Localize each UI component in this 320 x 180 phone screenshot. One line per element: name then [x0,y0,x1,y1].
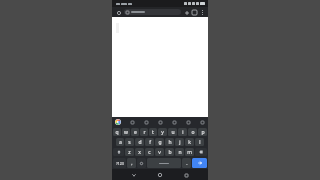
button[interactable]: Google [115,119,121,125]
staticText: ?123 [116,161,124,166]
staticText: h [168,139,172,146]
button[interactable]: GIF [143,119,149,125]
staticText: y [161,129,164,136]
button[interactable]: b [165,148,174,156]
button[interactable] [124,9,181,15]
button[interactable]: j [175,138,184,146]
button[interactable]: e [131,128,139,136]
staticText: k [188,139,191,146]
button[interactable]: d [135,138,144,146]
button[interactable]: r [140,128,148,136]
button[interactable]: ?123 [113,158,126,168]
staticText: s [128,139,131,146]
button[interactable]: h [165,138,174,146]
staticText: o [191,129,195,136]
staticText: t [152,129,154,136]
button[interactable]: n [175,148,184,156]
staticText: z [128,149,131,156]
staticText: m [187,149,192,156]
button[interactable]: Themes [129,119,135,125]
button[interactable]: m [185,148,194,156]
button[interactable]: Switch tabs [191,9,198,16]
staticText: p [201,129,205,136]
staticText: l [199,139,201,146]
staticText: e [134,129,137,136]
button[interactable]: Settings [185,119,191,125]
button[interactable]: g [155,138,164,146]
button[interactable]: u [168,128,177,136]
button[interactable]: o [188,128,197,136]
button[interactable]: t [149,128,157,136]
button[interactable]: Back [130,171,138,179]
staticText: d [138,139,142,146]
button[interactable]: k [185,138,194,146]
button[interactable]: Shift [113,148,124,156]
button[interactable]: Voice input [199,119,205,125]
staticText: x [138,149,141,156]
staticText: w [124,129,128,136]
button[interactable]: Enter [192,158,207,168]
staticText: i [182,129,184,136]
staticText: q [115,129,119,136]
button[interactable]: x [135,148,144,156]
button[interactable]: y [158,128,167,136]
staticText: g [158,139,162,146]
button[interactable]: z [125,148,134,156]
staticText: j [179,139,181,146]
button[interactable]: l [195,138,204,146]
button[interactable]: More options [199,9,205,15]
staticText: , [131,160,133,167]
button[interactable]: Backspace [195,148,207,156]
button[interactable]: Emoji [137,158,146,168]
button[interactable]: Home [156,171,164,179]
button[interactable]: v [155,148,164,156]
button[interactable]: Recent apps [182,171,190,179]
button[interactable]: Home [115,9,122,16]
button[interactable]: Space [147,158,181,168]
button[interactable]: q [113,128,121,136]
button[interactable]: f [145,138,154,146]
button[interactable]: c [145,148,154,156]
staticText: v [158,149,161,156]
button[interactable]: s [125,138,134,146]
staticText: f [149,139,151,146]
button[interactable]: New tab [183,9,190,16]
staticText: . [186,160,188,167]
button[interactable]: a [116,138,124,146]
staticText: a [119,139,122,146]
button[interactable]: Clipboard [171,119,177,125]
staticText: c [148,149,151,156]
button[interactable]: w [122,128,130,136]
staticText: r [143,129,146,136]
staticText: b [168,149,172,156]
button[interactable]: . [182,158,191,168]
button[interactable]: p [198,128,207,136]
staticText: n [178,149,182,156]
button[interactable]: , [127,158,136,168]
button[interactable]: i [178,128,187,136]
button[interactable]: Stickers [157,119,163,125]
staticText: u [171,129,175,136]
